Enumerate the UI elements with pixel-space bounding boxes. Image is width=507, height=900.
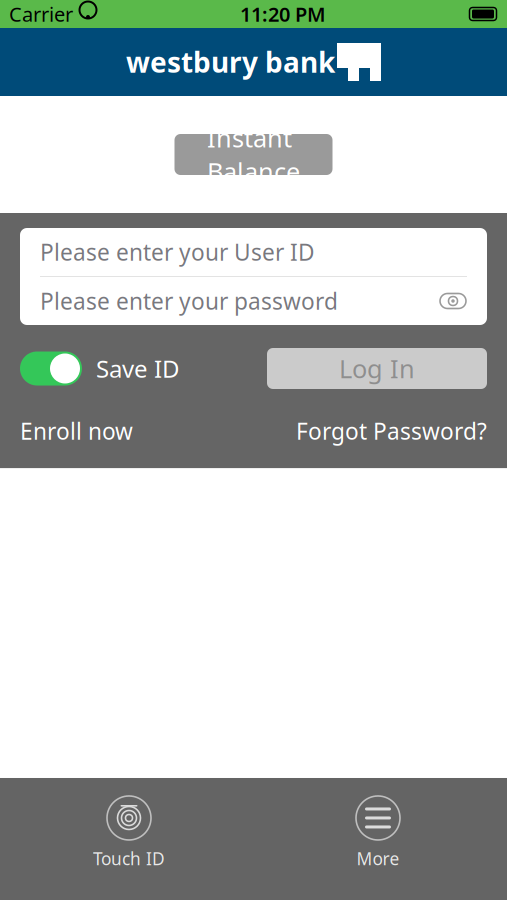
staticText: Please enter your password <box>40 286 338 316</box>
staticText: Please enter your User ID <box>40 237 315 267</box>
staticText: westbury bank <box>126 43 335 81</box>
staticText: Instant Balance <box>207 121 300 188</box>
button[interactable]: Forgot Password? <box>296 416 487 446</box>
staticText: More <box>356 847 399 870</box>
button[interactable]: Touch ID <box>64 796 194 870</box>
button[interactable]: Instant Balance <box>174 134 332 175</box>
staticText: Forgot Password? <box>296 416 487 446</box>
staticText: Touch ID <box>93 847 165 870</box>
staticText: Enroll now <box>20 416 133 446</box>
button[interactable]: Enroll now <box>20 416 133 446</box>
button[interactable]: Save ID <box>20 351 180 385</box>
staticText: Log In <box>339 352 415 385</box>
button[interactable]: Show password <box>439 291 467 311</box>
staticText: Carrier <box>9 1 73 27</box>
button[interactable]: Log In <box>267 348 487 389</box>
staticText: 11:20 PM <box>240 1 326 27</box>
button[interactable]: More <box>313 796 443 870</box>
staticText: Save ID <box>96 353 180 384</box>
